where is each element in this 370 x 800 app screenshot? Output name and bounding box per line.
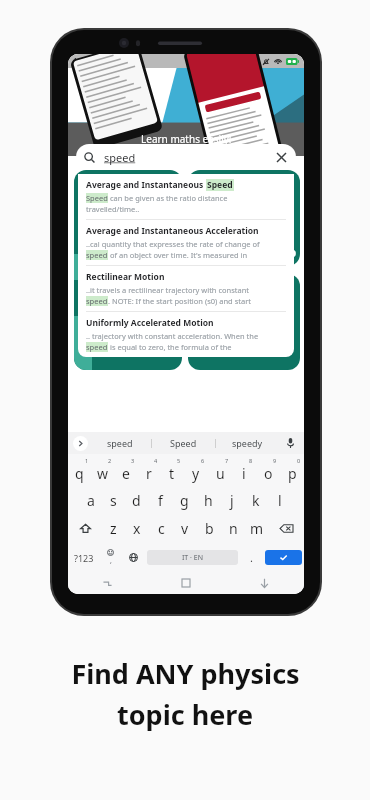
button[interactable] [74,170,182,370]
button[interactable]: r [137,458,160,486]
button[interactable]: h [196,486,220,514]
button[interactable]: p [280,458,304,486]
staticText: ..cal quantity that expresses the rate o… [86,239,260,249]
button[interactable]: Enter [265,550,302,565]
button[interactable]: o [256,458,280,486]
button[interactable]: IT · EN [147,550,238,565]
staticText: , [110,556,112,566]
staticText: speed [104,150,136,165]
staticText: ?123 [74,552,94,564]
button[interactable]: Average and Instantaneous Acceleration [78,220,294,265]
staticText: q [75,464,84,483]
staticText: G [97,56,103,67]
staticText: IT · EN [182,553,203,563]
button[interactable]: Backspace [269,514,304,543]
button[interactable]: w [91,458,114,486]
button[interactable]: ?123 [68,543,99,572]
staticText: is equal to zero, the formula of the [108,342,232,352]
button[interactable]: Recents [68,572,146,594]
staticText: . NOTE: If the start position (s0) and s… [108,296,251,306]
staticText: 19:24 [73,56,94,67]
staticText: p [288,464,297,483]
staticText: speedy [232,437,263,449]
button[interactable]: v [173,514,197,543]
button[interactable]: u [208,458,232,486]
staticText: 7 [225,457,229,464]
button[interactable]: e [114,458,137,486]
button[interactable]: k [244,486,268,514]
button[interactable]: Shift [68,514,102,543]
staticText: . [250,550,253,565]
staticText: j [230,491,234,510]
button[interactable]: q [68,458,91,486]
button[interactable]: Rectilinear Motion [78,266,294,311]
staticText: l [278,491,282,510]
button[interactable]: d [125,486,148,514]
button[interactable]: speed [88,432,151,454]
button[interactable]: t [160,458,184,486]
staticText: 3 [131,457,135,464]
button[interactable]: n [221,514,245,543]
button[interactable] [188,274,300,370]
staticText: .. trajectory with constant acceleration… [86,331,259,341]
button[interactable]: Home [146,572,225,594]
staticText: g [180,491,189,510]
staticText: 8 [249,457,253,464]
button[interactable]: . [240,543,263,572]
staticText: can be given as the ratio distance [108,193,228,203]
button[interactable]: More suggestions [73,436,88,451]
staticText: Speed [207,179,233,191]
button[interactable]: b [197,514,221,543]
staticText: e [122,464,130,483]
button[interactable]: j [220,486,244,514]
staticText: 1 [85,457,89,464]
button[interactable]: speed [76,144,296,170]
button[interactable]: Voice input [279,432,301,454]
staticText: d [132,491,141,510]
button[interactable]: Speed [151,432,215,454]
button[interactable]: Uniformly Accelerated Motion [78,312,294,357]
button[interactable]: c [149,514,173,543]
staticText: a [87,491,95,510]
staticText: ..it travels a rectilinear trajectory wi… [86,285,250,295]
staticText: 2 [108,457,112,464]
button[interactable]: Clear search [274,150,288,164]
button[interactable]: Emoji [99,543,122,572]
button[interactable]: x [125,514,149,543]
staticText: o [264,464,273,483]
button[interactable]: i [232,458,256,486]
button[interactable]: y [184,458,208,486]
button[interactable]: Learn maths easily! [68,68,304,156]
button[interactable]: speedy [215,432,279,454]
staticText: Uniformly Accelerated Motion [86,317,214,329]
staticText: 4 [154,457,158,464]
button[interactable]: Average and Instantaneous [78,174,294,219]
staticText: w [97,464,109,483]
staticText: n [229,519,238,538]
staticText: topic here [117,696,253,733]
button[interactable]: f [148,486,172,514]
staticText: Rectilinear Motion [86,271,165,283]
staticText: b [205,519,214,538]
button[interactable]: Hide keyboard [225,572,304,594]
button[interactable]: s [102,486,125,514]
button[interactable]: m [245,514,269,543]
staticText: Speed [86,193,108,203]
button[interactable]: z [102,514,125,543]
staticText: Find ANY physics [71,655,300,692]
staticText: y [192,464,200,483]
button[interactable]: Sto [188,170,300,266]
staticText: r [146,464,152,483]
staticText: of an object over time. It's measured in [108,250,248,260]
button[interactable]: Change language [122,543,145,572]
button[interactable]: a [79,486,102,514]
staticText: c [158,519,165,538]
staticText: 6 [201,457,205,464]
staticText: Speed [170,437,197,449]
staticText: speed [86,296,108,306]
staticText: Sto [277,244,297,260]
staticText: travelled/time.. [86,204,140,214]
button[interactable]: l [268,486,292,514]
staticText: m [250,519,264,538]
button[interactable]: g [172,486,196,514]
